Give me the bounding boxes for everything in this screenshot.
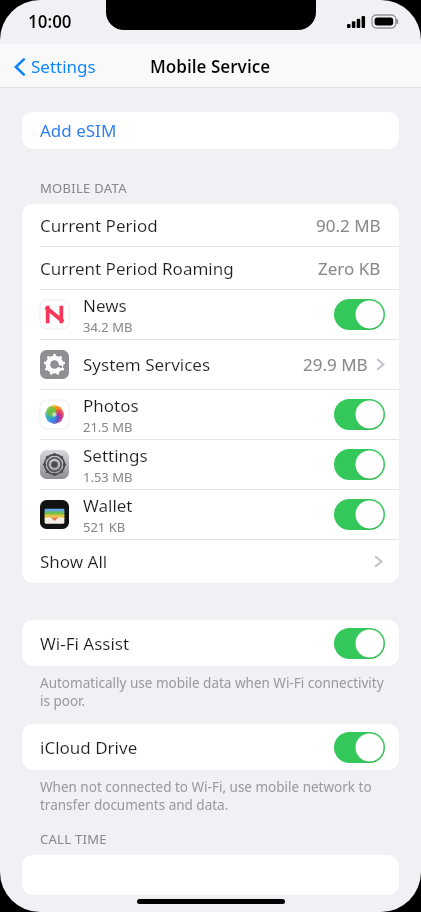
staticText: Photos: [83, 394, 139, 417]
button[interactable]: Toggle: [334, 732, 385, 763]
button[interactable]: Show All: [22, 540, 399, 583]
button[interactable]: Add eSIM: [22, 112, 399, 149]
staticText: News: [83, 294, 127, 317]
staticText: Show All: [40, 550, 374, 573]
staticText: iCloud Drive: [40, 736, 334, 759]
button[interactable]: Wallet: [22, 490, 399, 539]
staticText: Mobile Service: [150, 55, 271, 78]
button[interactable]: Settings: [10, 51, 100, 82]
staticText: When not connected to Wi-Fi, use mobile …: [40, 778, 391, 814]
button[interactable]: Wi-Fi Assist: [22, 620, 399, 666]
staticText: Zero KB: [318, 257, 381, 280]
button[interactable]: iCloud Drive: [22, 724, 399, 770]
button[interactable]: Current Period Roaming: [22, 247, 399, 289]
button[interactable]: Current Period: [22, 204, 399, 246]
staticText: 90.2 MB: [316, 214, 381, 237]
button[interactable]: Toggle: [334, 499, 385, 530]
staticText: Current Period Roaming: [40, 257, 318, 280]
button[interactable]: Photos: [22, 390, 399, 439]
staticText: Automatically use mobile data when Wi-Fi…: [40, 674, 391, 710]
button[interactable]: Toggle: [334, 299, 385, 330]
button[interactable]: Settings: [22, 440, 399, 489]
staticText: Wi-Fi Assist: [40, 632, 334, 655]
button[interactable]: System Services: [22, 340, 399, 389]
button[interactable]: News: [22, 290, 399, 339]
button[interactable]: Toggle: [334, 399, 385, 430]
staticText: 10:00: [28, 10, 72, 33]
staticText: System Services: [83, 353, 211, 376]
staticText: 34.2 MB: [83, 318, 133, 336]
staticText: Wallet: [83, 494, 133, 517]
staticText: 521 KB: [83, 518, 126, 536]
staticText: Settings: [31, 55, 96, 78]
staticText: Add eSIM: [40, 119, 117, 142]
staticText: 29.9 MB: [303, 353, 368, 376]
staticText: 21.5 MB: [83, 418, 133, 436]
staticText: MOBILE DATA: [40, 179, 127, 197]
staticText: 1.53 MB: [83, 468, 133, 486]
staticText: CALL TIME: [40, 830, 107, 848]
button[interactable]: Toggle: [334, 449, 385, 480]
button[interactable]: Toggle: [334, 628, 385, 659]
staticText: Settings: [83, 444, 148, 467]
staticText: Current Period: [40, 214, 316, 237]
